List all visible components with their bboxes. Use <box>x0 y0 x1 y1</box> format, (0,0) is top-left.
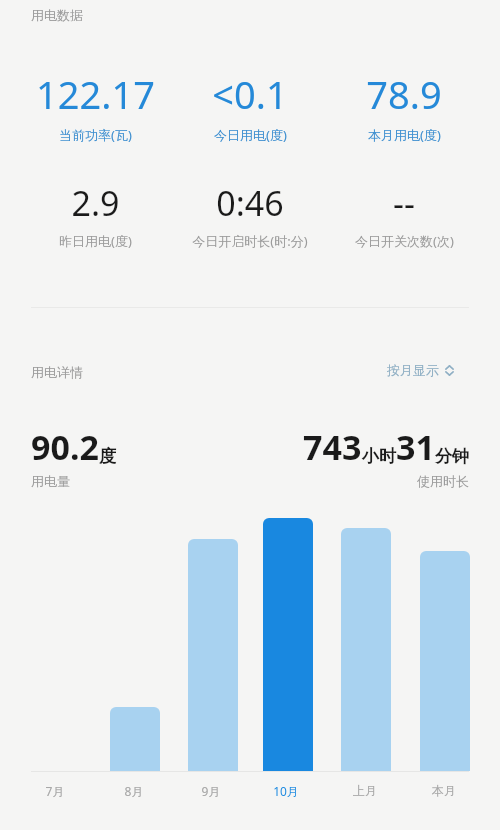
button[interactable]: 122.17 <box>5 68 185 144</box>
staticText: 10月 <box>256 783 316 799</box>
staticText: 122.17 <box>36 68 155 120</box>
button[interactable]: 本月 <box>414 783 474 798</box>
staticText: 743 <box>303 424 362 470</box>
staticText: 本月 <box>414 783 474 798</box>
staticText: 用电详情 <box>31 364 83 380</box>
staticText: 0:46 <box>216 180 284 226</box>
button[interactable] <box>110 707 160 771</box>
staticText: 用电量 <box>31 473 70 489</box>
staticText: 昨日用电(度) <box>59 232 132 250</box>
other: Change period <box>444 364 455 377</box>
button[interactable]: 9月 <box>181 783 241 799</box>
staticText: 9月 <box>181 783 241 799</box>
staticText: 小时 <box>362 446 396 467</box>
staticText: 上月 <box>335 783 395 798</box>
staticText: 31 <box>396 424 435 470</box>
staticText: 78.9 <box>366 68 442 120</box>
button[interactable]: 7月 <box>25 783 85 799</box>
staticText: 90.2 <box>31 424 99 470</box>
button[interactable]: 2.9 <box>5 180 185 250</box>
button[interactable]: 8月 <box>104 783 164 799</box>
staticText: <0.1 <box>212 68 288 120</box>
button[interactable] <box>263 518 313 771</box>
staticText: 按月显示 <box>387 362 439 378</box>
staticText: 分钟 <box>435 446 469 467</box>
staticText: 使用时长 <box>417 473 469 489</box>
staticText: -- <box>393 180 415 226</box>
button[interactable]: -- <box>314 180 494 250</box>
button[interactable]: 10月 <box>256 783 316 799</box>
staticText: 当前功率(瓦) <box>59 126 132 144</box>
button[interactable]: 78.9 <box>314 68 494 144</box>
button[interactable]: 0:46 <box>160 180 340 250</box>
staticText: 8月 <box>104 783 164 799</box>
staticText: 今日开启时长(时:分) <box>192 232 308 250</box>
staticText: 今日用电(度) <box>214 126 287 144</box>
staticText: 2.9 <box>71 180 120 226</box>
staticText: 本月用电(度) <box>368 126 441 144</box>
staticText: 用电数据 <box>31 7 83 23</box>
staticText: 度 <box>99 446 116 467</box>
staticText: 7月 <box>25 783 85 799</box>
button[interactable]: 上月 <box>335 783 395 798</box>
button[interactable]: 按月显示 <box>383 358 459 382</box>
button[interactable]: <0.1 <box>160 68 340 144</box>
staticText: 今日开关次数(次) <box>355 232 454 250</box>
